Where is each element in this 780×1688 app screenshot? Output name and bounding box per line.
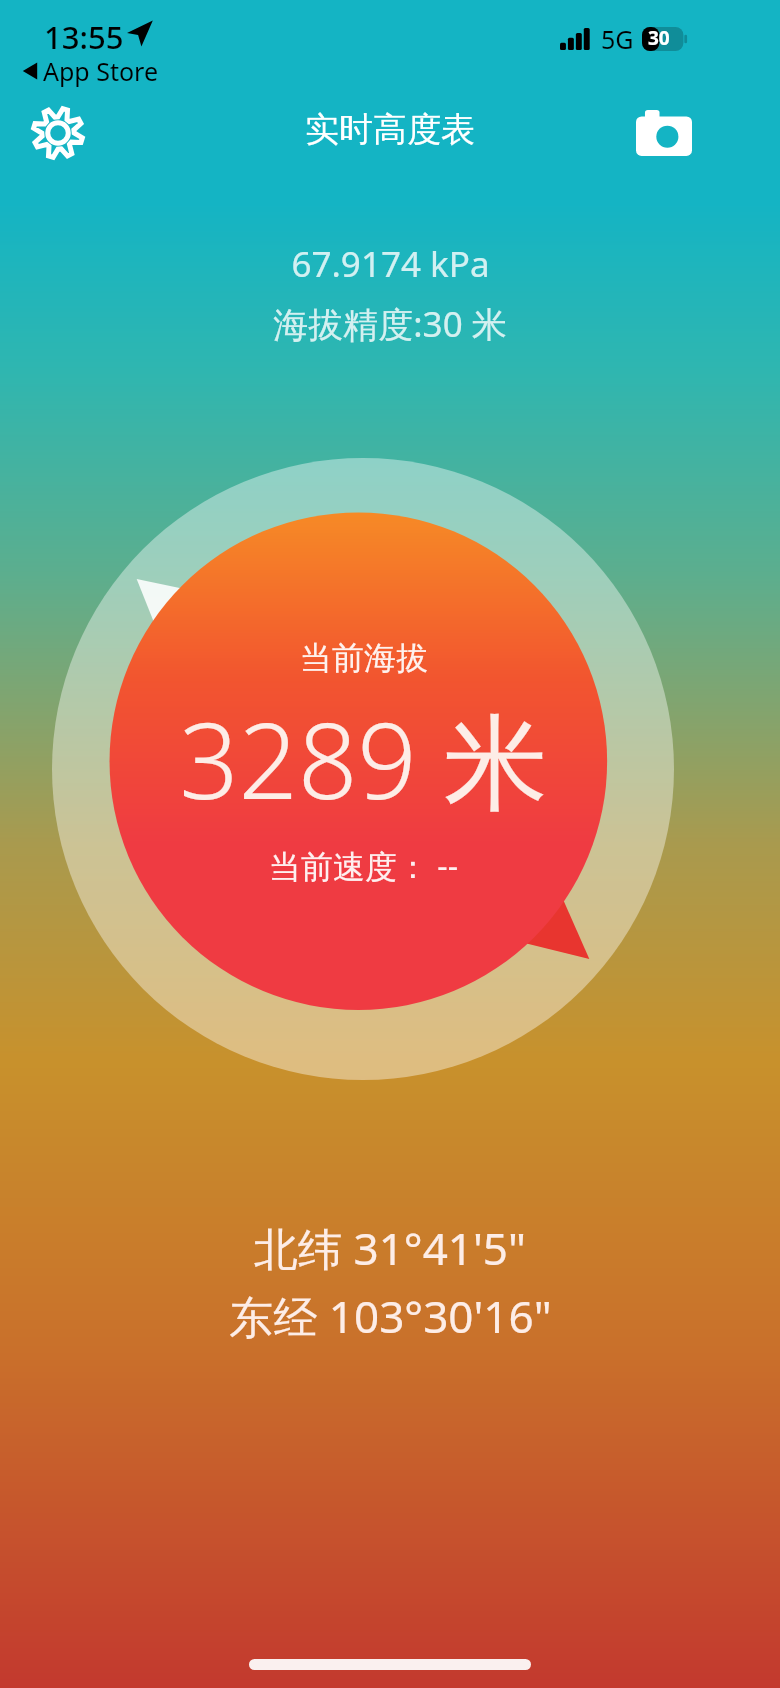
staticText: 13:55: [44, 16, 124, 58]
staticText: 30: [648, 25, 670, 51]
button[interactable]: App Store: [22, 54, 159, 88]
staticText: 3289 米: [179, 688, 548, 830]
staticText: 实时高度表: [305, 108, 475, 151]
staticText: 5G: [601, 22, 634, 56]
staticText: 东经 103°30'16": [229, 1286, 552, 1346]
staticText: 当前海拔: [300, 638, 428, 678]
staticText: 当前速度： --: [269, 844, 458, 888]
staticText: 海拔精度:30 米: [273, 300, 507, 348]
button[interactable]: Altitude gauge: [52, 458, 674, 1080]
staticText: 北纬 31°41'5": [254, 1218, 526, 1278]
staticText: 67.9174 kPa: [291, 240, 490, 288]
button[interactable]: Settings: [22, 97, 94, 169]
button[interactable]: Camera: [628, 97, 700, 169]
staticText: App Store: [43, 54, 159, 88]
